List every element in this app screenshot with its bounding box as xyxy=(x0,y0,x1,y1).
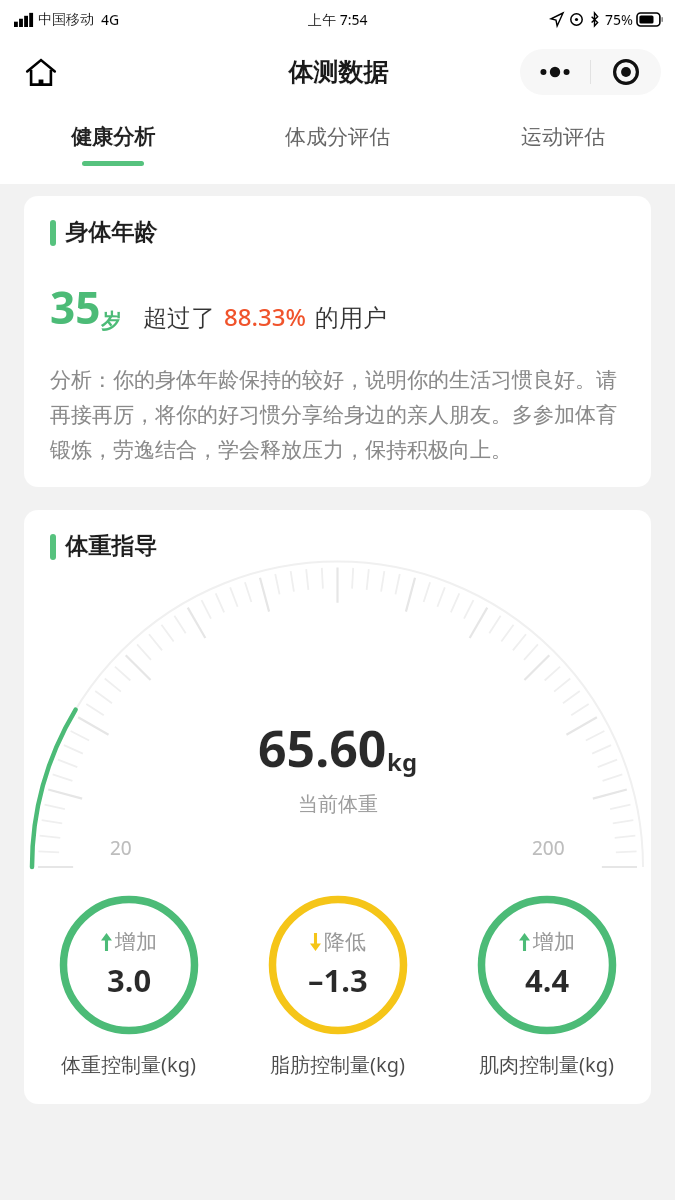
staticText: 上午 7:54 xyxy=(308,10,368,29)
staticText: 体成分评估 xyxy=(285,124,390,150)
staticText: 肌肉控制量(kg) xyxy=(479,1051,614,1078)
staticText: 岁 xyxy=(101,309,121,334)
staticText: 的用户 xyxy=(315,303,387,333)
button[interactable]: 体成分评估 xyxy=(225,106,450,184)
staticText: –1.3 xyxy=(308,959,368,1001)
staticText: 分析：你的身体年龄保持的较好，说明你的生活习惯良好。请再接再厉，将你的好习惯分享… xyxy=(50,367,625,463)
staticText: 20 xyxy=(110,835,132,861)
staticText: 脂肪控制量(kg) xyxy=(270,1051,405,1078)
button[interactable]: 增加 xyxy=(442,895,651,1078)
staticText: 体测数据 xyxy=(288,57,388,88)
staticText: 4.4 xyxy=(525,959,570,1001)
button[interactable]: 健康分析 xyxy=(0,106,225,184)
staticText: 运动评估 xyxy=(521,124,605,150)
staticText: 88.33% xyxy=(224,300,306,333)
button[interactable]: Menu and close xyxy=(520,49,661,95)
staticText: 4G xyxy=(101,10,120,29)
staticText: 200 xyxy=(532,835,565,861)
button[interactable]: 体重指导 xyxy=(24,510,651,1104)
staticText: 超过了 xyxy=(143,303,215,333)
staticText: 增加 xyxy=(115,929,157,955)
staticText: 体重指导 xyxy=(65,532,157,561)
staticText: 65.60 xyxy=(258,714,387,782)
staticText: 35 xyxy=(50,277,101,337)
staticText: 3.0 xyxy=(107,959,152,1001)
button[interactable]: 增加 xyxy=(24,895,233,1078)
button[interactable]: 降低 xyxy=(233,895,442,1078)
staticText: 增加 xyxy=(533,929,575,955)
staticText: 降低 xyxy=(324,929,366,955)
button[interactable]: Home xyxy=(20,51,62,93)
staticText: 中国移动 xyxy=(38,11,94,29)
staticText: 75% xyxy=(605,10,633,29)
staticText: 体重控制量(kg) xyxy=(61,1051,196,1078)
staticText: 当前体重 xyxy=(298,792,378,817)
button[interactable]: 身体年龄 xyxy=(24,196,651,487)
staticText: 健康分析 xyxy=(71,124,155,150)
staticText: kg xyxy=(387,745,418,778)
staticText: 身体年龄 xyxy=(65,218,157,247)
button[interactable]: 运动评估 xyxy=(450,106,675,184)
